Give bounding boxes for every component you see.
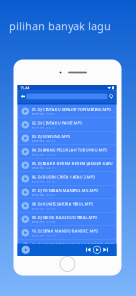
button[interactable]: Next	[103, 248, 108, 252]
button[interactable]: 06. DJ BUDIN CINTA 1 ATAU 2.MP3	[17, 172, 116, 185]
staticText: Artist mix - 03:27	[32, 193, 56, 197]
staticText: 05. DJ IBARR BEREM BEREM JANGER KAYU	[32, 161, 113, 166]
staticText: Artist mix - 03:58	[32, 153, 56, 156]
staticText: Artist mix - 03:33	[32, 180, 56, 183]
staticText: Artist mix - 04:15	[32, 234, 56, 237]
button[interactable]: 11. DJ HE COMENT KUBURAN DOKTER ONTA	[17, 239, 116, 253]
button[interactable]: 02. DJ CINTAKU PAHIT.MP3	[17, 118, 116, 131]
button[interactable]: 07. DJ YO NIBAN MANIPUL MG.MP3	[17, 185, 116, 199]
staticText: 10. DJ SIPAK MANDO BANDEC.MP3	[32, 228, 98, 233]
button[interactable]: 01. DJ CINTAKU SEPAHIT TOPI MIRING.MP3	[17, 104, 116, 118]
staticText: 01. DJ CINTAKU SEPAHIT TOPI MIRING.MP3	[32, 107, 111, 112]
button[interactable]: Back	[19, 90, 26, 102]
button[interactable]: 10. DJ SIPAK MANDO BANDEC.MP3	[17, 226, 116, 239]
staticText: Artist mix - 03:48	[32, 220, 56, 224]
button[interactable]: 08. DJ KUMIS SARIRA YIBUL.MP3	[17, 199, 116, 212]
staticText: Artist mix - 03:41	[32, 112, 56, 116]
staticText: 06. DJ BUDIN CINTA 1 ATAU 2.MP3	[32, 174, 95, 179]
staticText: 03. DJ SUWUNG.MP3	[32, 134, 70, 139]
staticText: 02. DJ CINTAKU PAHIT.MP3	[32, 120, 82, 125]
button[interactable]: 03. DJ SUWUNG.MP3	[17, 131, 116, 145]
staticText: 11. DJ HE COMENT KUBURAN DOKTER ONTA	[32, 242, 116, 247]
staticText: pilihan banyak lagu	[9, 19, 111, 33]
button[interactable]: Search	[108, 90, 115, 102]
button[interactable]: Now playing	[22, 246, 30, 254]
staticText: Artist mix - 03:13	[32, 126, 56, 129]
staticText: 15.44	[20, 85, 29, 90]
button[interactable]: Previous	[86, 248, 91, 252]
button[interactable]: 09. DJ SIKOK BAGI DUO YIBAL.MP3	[17, 212, 116, 226]
button[interactable]: Play	[93, 246, 101, 253]
staticText: 07. DJ YO NIBAN MANIPUL MG.MP3	[32, 188, 98, 193]
staticText: Artist mix - 04:06	[32, 207, 56, 210]
staticText: Artist mix - 04:11	[32, 166, 56, 170]
staticText: 09. DJ SIKOK BAGI DUO YIBAL.MP3	[32, 215, 97, 220]
staticText: 08. DJ KUMIS SARIRA YIBUL.MP3	[32, 201, 93, 206]
button[interactable]: 05. DJ IBARR BEREM BEREM JANGER KAYU	[17, 158, 116, 172]
staticText: 04. DJ AYANG PELUKLAH TUBUHKU.MP3	[32, 147, 107, 152]
staticText: Artist mix - 04:02	[32, 139, 56, 143]
button[interactable]: 04. DJ AYANG PELUKLAH TUBUHKU.MP3	[17, 145, 116, 158]
